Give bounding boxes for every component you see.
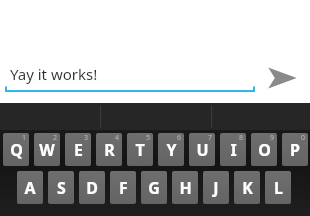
staticText: I [230,139,237,161]
staticText: 7 [208,133,213,143]
button[interactable]: P [282,133,308,166]
staticText: R [104,139,115,161]
staticText: 8 [239,133,244,143]
staticText: 9 [270,133,275,143]
staticText: 6 [177,133,182,143]
button[interactable]: Yay it works! [5,62,255,94]
staticText: P [290,139,300,161]
staticText: T [135,139,145,161]
button[interactable]: L [265,171,291,204]
button[interactable]: R [96,133,122,166]
button[interactable]: H [172,171,198,204]
staticText: H [179,177,192,199]
button[interactable]: F [110,171,136,204]
staticText: Yay it works! [10,64,98,84]
staticText: 3 [84,133,89,143]
button[interactable]: D [79,171,105,204]
staticText: G [148,177,160,199]
staticText: E [74,139,83,161]
button[interactable]: O [251,133,277,166]
staticText: 0 [301,133,306,143]
staticText: K [242,177,253,199]
button[interactable]: Y [158,133,184,166]
button[interactable]: E [65,133,91,166]
button[interactable]: T [127,133,153,166]
button[interactable]: G [141,171,167,204]
staticText: A [24,177,36,199]
staticText: F [119,177,128,199]
button[interactable]: Send [262,60,302,96]
staticText: W [39,139,55,161]
button[interactable]: I [220,133,246,166]
staticText: J [213,177,219,199]
button[interactable]: Q [3,133,29,166]
staticText: U [196,139,209,161]
staticText: 2 [53,133,58,143]
staticText: L [274,177,283,199]
button[interactable]: J [203,171,229,204]
staticText: Y [166,139,177,161]
button[interactable]: A [17,171,43,204]
staticText: O [258,139,271,161]
staticText: Q [10,139,23,161]
staticText: 4 [115,133,120,143]
button[interactable]: K [234,171,260,204]
button[interactable]: W [34,133,60,166]
button[interactable]: U [189,133,215,166]
staticText: S [57,177,66,199]
staticText: D [86,177,98,199]
staticText: 1 [22,133,27,143]
button[interactable]: S [48,171,74,204]
staticText: 5 [146,133,151,143]
